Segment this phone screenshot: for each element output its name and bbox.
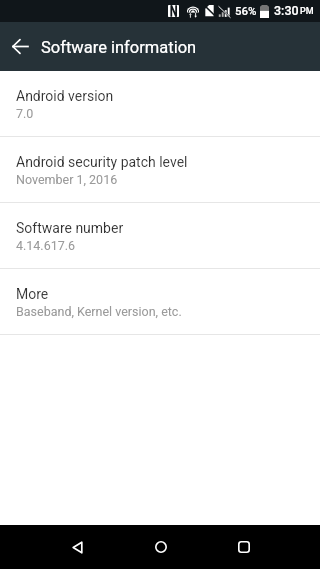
staticText: Baseband, Kernel version, etc.: [16, 304, 182, 319]
button[interactable]: Navigate up: [0, 22, 41, 71]
staticText: 3:30: [274, 3, 299, 18]
staticText: PM: [300, 6, 314, 17]
staticText: 4.14.617.6: [16, 238, 76, 253]
staticText: 56%: [235, 4, 257, 17]
staticText: Android version: [16, 88, 114, 104]
staticText: Software information: [41, 38, 197, 57]
button[interactable]: Back: [57, 525, 98, 569]
button[interactable]: More: [0, 269, 320, 334]
button[interactable]: Recent apps: [223, 525, 264, 569]
staticText: More: [16, 286, 49, 302]
staticText: Android security patch level: [16, 154, 188, 170]
staticText: November 1, 2016: [16, 172, 118, 187]
button[interactable]: Android version: [0, 71, 320, 136]
staticText: 7.0: [16, 106, 34, 121]
staticText: Software number: [16, 220, 124, 236]
button[interactable]: Home: [140, 525, 181, 569]
button[interactable]: Software number: [0, 203, 320, 268]
button[interactable]: Android security patch level: [0, 137, 320, 202]
